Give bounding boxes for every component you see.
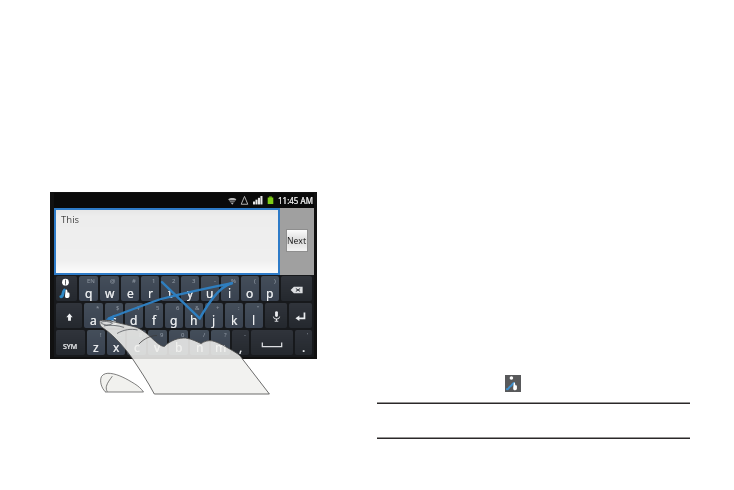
staticText: ( — [254, 277, 256, 285]
staticText: i — [228, 285, 232, 301]
button[interactable]: - — [232, 330, 249, 355]
staticText: j — [212, 312, 216, 328]
staticText: 4 — [136, 304, 140, 312]
button[interactable]: ? — [211, 330, 230, 355]
staticText: 2 — [172, 277, 176, 285]
button[interactable] — [265, 303, 287, 328]
staticText: w — [105, 285, 115, 301]
button[interactable]: Swipe typing — [505, 375, 521, 392]
button[interactable]: : — [225, 303, 243, 328]
button[interactable]: * — [84, 303, 103, 328]
staticText: % — [231, 277, 236, 285]
button[interactable]: 6 — [165, 303, 183, 328]
button[interactable]: ' — [295, 330, 312, 355]
staticText: This — [61, 213, 80, 226]
staticText: & — [195, 304, 200, 312]
staticText: l — [252, 312, 256, 328]
button[interactable] — [251, 330, 293, 355]
staticText: k — [231, 312, 238, 328]
button[interactable]: 9 — [148, 330, 167, 355]
button[interactable]: ( — [241, 276, 259, 301]
button[interactable] — [281, 276, 312, 301]
staticText: o — [246, 285, 254, 301]
staticText: 6 — [176, 304, 180, 312]
staticText: + — [216, 304, 220, 312]
staticText: 9 — [160, 331, 164, 339]
staticText: - — [214, 277, 216, 285]
staticText: 5 — [156, 304, 160, 312]
button[interactable]: 3 — [181, 276, 199, 301]
staticText: $ — [116, 304, 120, 312]
staticText: EN — [87, 277, 95, 285]
button[interactable]: + — [205, 303, 223, 328]
staticText: x — [113, 339, 120, 355]
button[interactable]: ~ — [107, 330, 125, 355]
staticText: f — [152, 312, 157, 328]
button[interactable]: & — [185, 303, 203, 328]
staticText: SYM — [63, 342, 78, 352]
staticText: 1 — [152, 277, 156, 285]
button[interactable]: 2 — [161, 276, 179, 301]
button[interactable]: " — [245, 303, 263, 328]
staticText: b — [175, 339, 183, 355]
staticText: ? — [224, 331, 227, 339]
staticText: h — [190, 312, 198, 328]
staticText: r — [148, 285, 153, 301]
staticText: / — [203, 331, 206, 339]
staticText: ' — [307, 331, 309, 339]
button[interactable] — [56, 276, 77, 301]
button[interactable]: - — [201, 276, 219, 301]
staticText: t — [168, 285, 173, 301]
staticText: y — [187, 285, 194, 301]
staticText: - — [244, 331, 246, 339]
button[interactable]: SYM — [56, 330, 85, 355]
staticText: @ — [110, 277, 116, 285]
staticText: , — [239, 339, 243, 355]
staticText: a — [90, 312, 97, 328]
staticText: c — [134, 339, 140, 355]
staticText: ~ — [118, 331, 122, 339]
button[interactable]: EN — [79, 276, 98, 301]
staticText: d — [130, 312, 138, 328]
staticText: e — [127, 285, 134, 301]
staticText: Next — [287, 235, 307, 247]
button[interactable] — [289, 303, 312, 328]
button[interactable]: ! — [87, 330, 105, 355]
staticText: z — [93, 339, 99, 355]
staticText: u — [206, 285, 214, 301]
staticText: m — [215, 339, 227, 355]
staticText: . — [302, 339, 306, 355]
staticText: 11:45 AM — [278, 195, 313, 206]
button[interactable]: @ — [100, 276, 119, 301]
button[interactable]: 8 — [127, 330, 146, 355]
button[interactable]: 0 — [169, 330, 188, 355]
staticText: p — [266, 285, 274, 301]
button[interactable]: 5 — [145, 303, 163, 328]
button[interactable]: $ — [105, 303, 123, 328]
button[interactable]: 1 — [141, 276, 159, 301]
staticText: * — [96, 304, 100, 312]
button[interactable]: / — [190, 330, 209, 355]
staticText: g — [170, 312, 178, 328]
staticText: 3 — [192, 277, 196, 285]
button[interactable]: Next — [287, 230, 307, 251]
button[interactable]: % — [221, 276, 239, 301]
staticText: 0 — [181, 331, 185, 339]
staticText: : — [238, 304, 240, 312]
staticText: " — [257, 304, 260, 312]
button[interactable]: 4 — [125, 303, 143, 328]
button[interactable] — [56, 303, 82, 328]
staticText: # — [132, 277, 136, 285]
staticText: s — [111, 312, 117, 328]
button[interactable]: ) — [261, 276, 279, 301]
button[interactable]: # — [121, 276, 139, 301]
staticText: n — [196, 339, 204, 355]
staticText: ) — [274, 277, 276, 285]
staticText: v — [154, 339, 161, 355]
staticText: ! — [100, 331, 102, 339]
staticText: q — [85, 285, 93, 301]
